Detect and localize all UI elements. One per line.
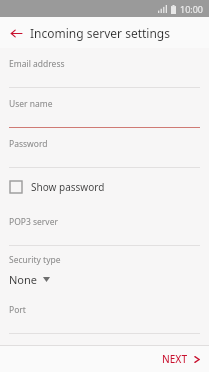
- staticText: Email address: [9, 58, 65, 70]
- button[interactable]: User name: [0, 88, 209, 128]
- button[interactable]: NEXT: [153, 348, 209, 370]
- button[interactable]: Port: [0, 294, 209, 334]
- staticText: None: [9, 272, 38, 287]
- button[interactable]: POP3 server: [0, 206, 209, 246]
- staticText: Show password: [31, 180, 105, 194]
- staticText: User name: [9, 98, 53, 110]
- button[interactable]: Security type: [0, 246, 209, 294]
- button[interactable]: Email address: [0, 48, 209, 88]
- staticText: POP3 server: [9, 216, 58, 228]
- staticText: 10:00: [180, 3, 204, 15]
- staticText: NEXT: [162, 352, 188, 366]
- staticText: Security type: [9, 254, 61, 266]
- button[interactable]: Show password: [0, 168, 209, 206]
- staticText: Incoming server settings: [30, 25, 170, 41]
- staticText: Port: [9, 304, 26, 316]
- staticText: Password: [9, 138, 48, 150]
- button[interactable]: Back: [5, 22, 27, 44]
- button[interactable]: Password: [0, 128, 209, 168]
